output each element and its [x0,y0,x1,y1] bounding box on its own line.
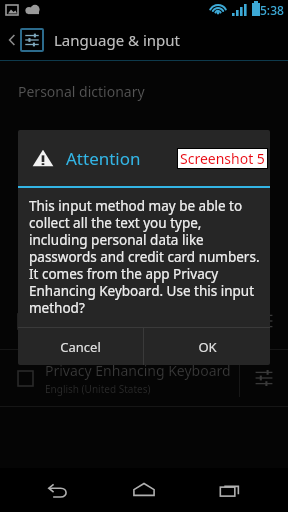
staticText: This input method may be able to collect… [29,197,260,317]
button[interactable]: Home [116,468,172,512]
staticText: Cancel [60,338,101,356]
button[interactable]: Settings [240,293,288,349]
button[interactable]: Back [30,468,86,512]
staticText: Google voice typing [45,304,176,323]
staticText: English (United States) [45,382,151,396]
button[interactable]: Personal dictionary [0,69,288,113]
button[interactable]: Back [0,20,288,60]
staticText: Personal dictionary [18,82,145,101]
button[interactable]: Recents [202,468,258,512]
staticText: Screenshot 5 [180,149,265,168]
staticText: Language & input [54,30,180,50]
staticText: OK [198,338,217,356]
button[interactable]: Privacy Enhancing Keyboard [0,350,288,406]
button[interactable]: Cancel [18,328,143,365]
other: Back [6,30,18,50]
button[interactable]: OK [144,328,270,365]
button[interactable]: Google voice typing [0,293,288,349]
staticText: 5:38 [260,2,284,18]
staticText: Automatic [45,325,94,339]
staticText: Privacy Enhancing Keyboard [45,361,231,380]
button[interactable]: Settings [240,350,288,406]
staticText: Attention [66,147,141,170]
